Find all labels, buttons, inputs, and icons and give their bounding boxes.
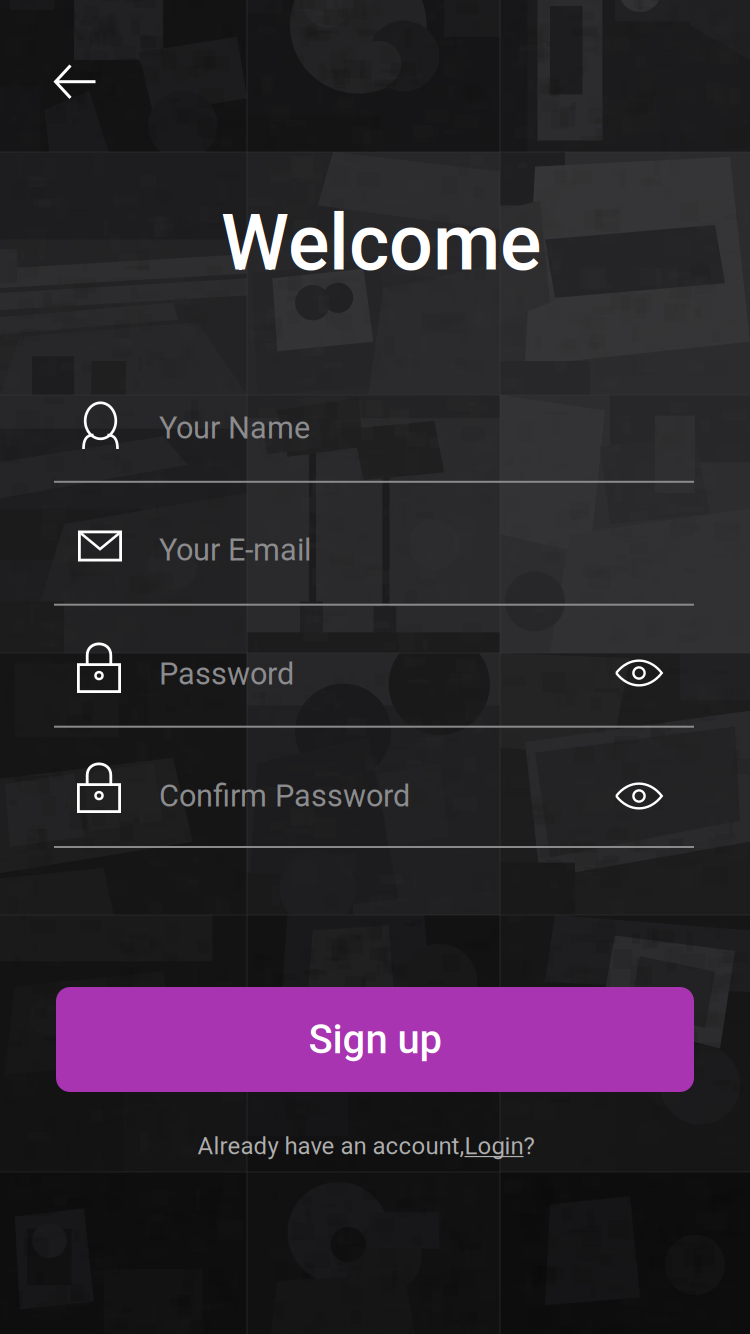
button[interactable]: Already have an account,Login? bbox=[116, 1123, 616, 1169]
button[interactable]: Show confirm password bbox=[597, 759, 681, 833]
button[interactable]: Back bbox=[27, 36, 123, 128]
button[interactable]: Sign up bbox=[56, 987, 694, 1092]
staticText: Confirm Password bbox=[159, 778, 410, 814]
staticText: Password bbox=[159, 656, 294, 692]
button[interactable]: Show password bbox=[597, 636, 681, 710]
staticText: Your Name bbox=[159, 410, 310, 446]
staticText: Already have an account,Login? bbox=[197, 1132, 534, 1160]
staticText: Sign up bbox=[308, 1016, 441, 1063]
staticText: Your E-mail bbox=[159, 532, 311, 568]
staticText: Welcome bbox=[221, 198, 541, 288]
